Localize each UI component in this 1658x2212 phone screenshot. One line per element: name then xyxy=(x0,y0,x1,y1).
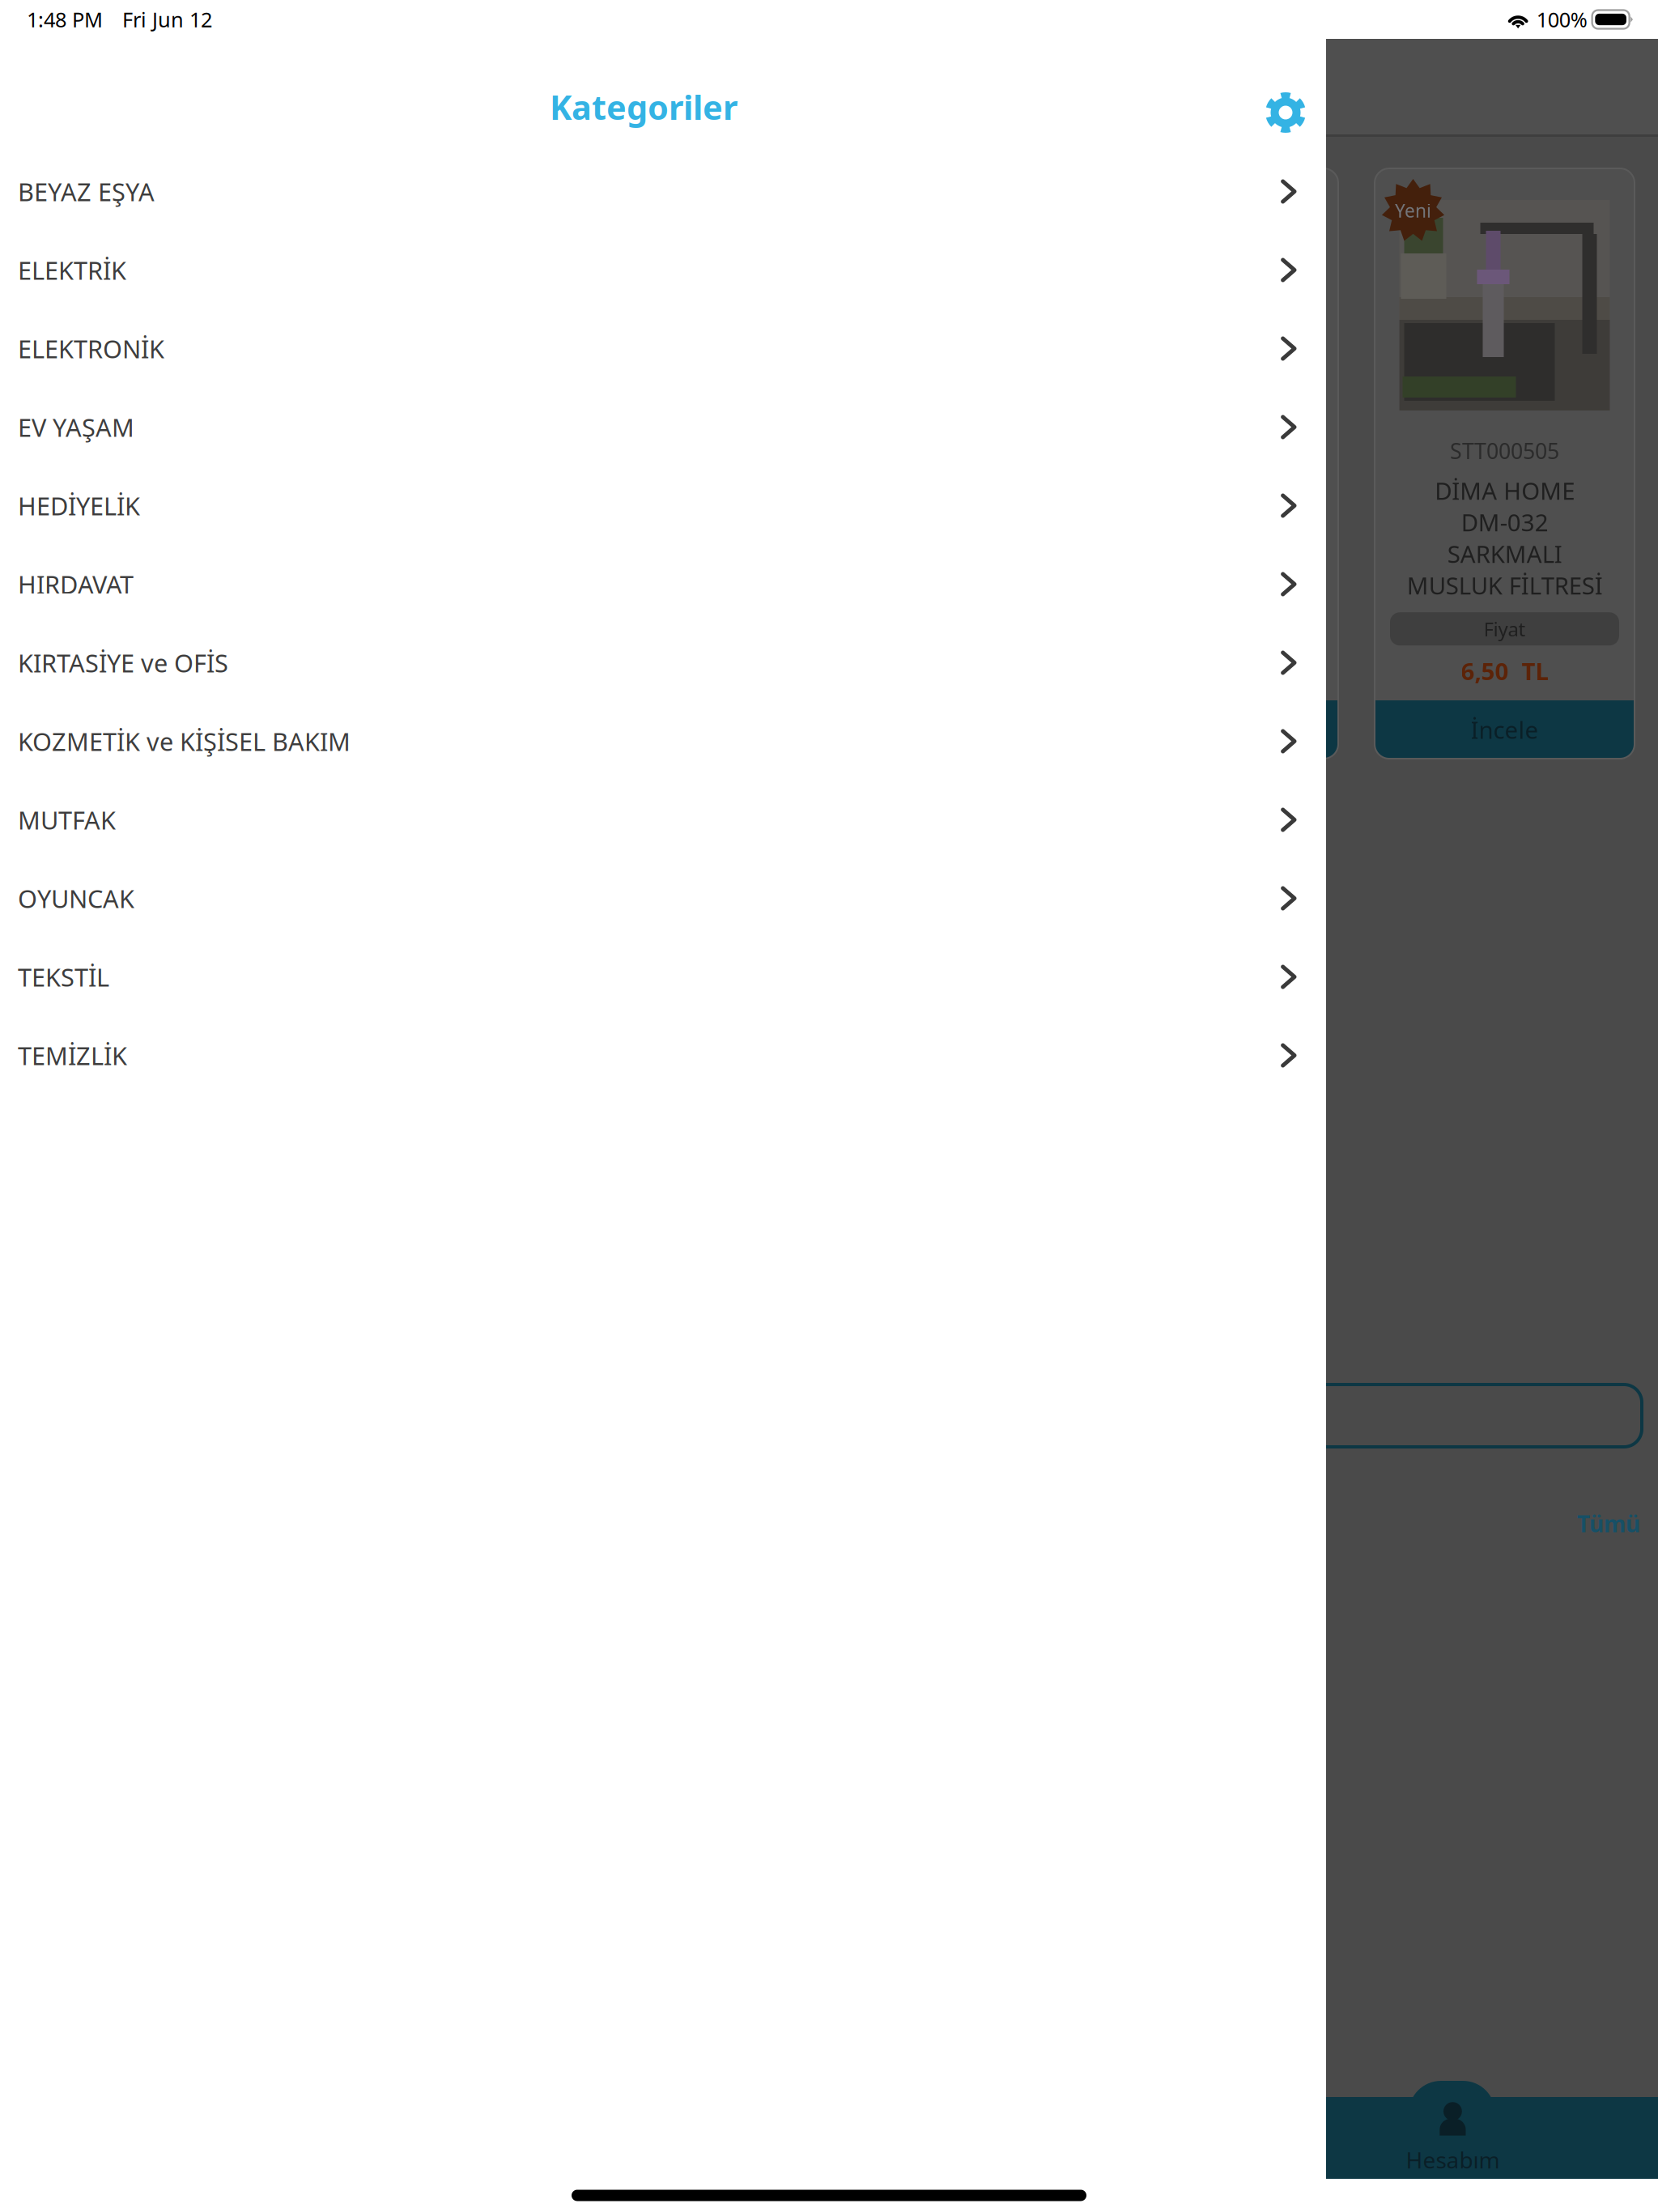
staticText: 6,50 TL xyxy=(1461,655,1548,687)
button[interactable]: HIRDAVAT xyxy=(0,545,1326,623)
staticText: 1:48 PM xyxy=(27,6,103,33)
staticText: TEKSTİL xyxy=(18,960,109,993)
staticText: Tümü xyxy=(1577,1508,1640,1539)
button[interactable]: BEYAZ EŞYA xyxy=(0,152,1326,231)
staticText: Fiyat xyxy=(1484,616,1526,642)
button[interactable]: OYUNCAK xyxy=(0,859,1326,938)
staticText: DİMA HOME DM-032 SARKMALI MUSLUK FİLTRES… xyxy=(1110,475,1306,601)
staticText: ELEKTRİK xyxy=(18,254,126,286)
staticText: HIRDAVAT xyxy=(18,568,134,601)
button[interactable]: Ayarlar xyxy=(1261,88,1310,137)
staticText: OYUNCAK xyxy=(18,882,134,915)
button[interactable]: ELEKTRİK xyxy=(0,231,1326,309)
button[interactable]: EV YAŞAM xyxy=(0,388,1326,466)
button[interactable]: MUTFAK xyxy=(0,781,1326,859)
staticText: İncele xyxy=(1471,714,1539,745)
staticText: Yeni xyxy=(1395,198,1431,223)
staticText: TEMİZLİK xyxy=(18,1039,127,1072)
staticText: ELEKTRONİK xyxy=(18,332,164,365)
staticText: DİMA HOME DM-032 SARKMALI MUSLUK FİLTRES… xyxy=(1407,475,1603,601)
staticText: Kategoriler xyxy=(550,85,738,129)
button[interactable]: HEDİYELİK xyxy=(0,466,1326,545)
staticText: BEYAZ EŞYA xyxy=(18,175,155,208)
staticText: KIRTASİYE ve OFİS xyxy=(18,646,228,679)
button[interactable]: TEMİZLİK xyxy=(0,1016,1326,1095)
staticText: KOZMETİK ve KİŞİSEL BAKIM xyxy=(18,725,351,758)
staticText: STT000505 xyxy=(1450,436,1559,465)
staticText: MUTFAK xyxy=(18,803,116,836)
button[interactable]: KOZMETİK ve KİŞİSEL BAKIM xyxy=(0,702,1326,781)
button[interactable]: KIRTASİYE ve OFİS xyxy=(0,623,1326,702)
button[interactable]: TEKSTİL xyxy=(0,938,1326,1016)
staticText: 100% xyxy=(1536,6,1587,33)
staticText: Fri Jun 12 xyxy=(122,6,212,33)
staticText: EV YAŞAM xyxy=(18,411,134,444)
staticText: Hesabım xyxy=(1406,2145,1500,2175)
button[interactable]: ELEKTRONİK xyxy=(0,309,1326,388)
staticText: HEDİYELİK xyxy=(18,489,140,522)
